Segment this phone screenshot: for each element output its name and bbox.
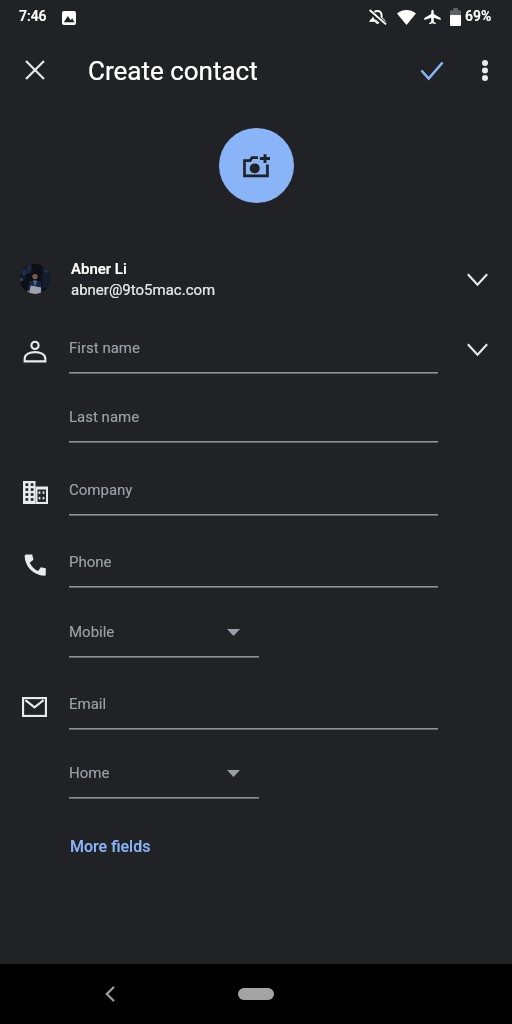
staticText: More fields bbox=[70, 837, 151, 856]
button[interactable]: Phone bbox=[69, 545, 438, 589]
staticText: Mobile bbox=[69, 623, 115, 641]
button[interactable]: Save contact bbox=[408, 46, 456, 94]
staticText: abner@9to5mac.com bbox=[71, 281, 216, 299]
button[interactable]: Close bbox=[11, 46, 59, 94]
button[interactable]: Email bbox=[69, 687, 438, 731]
staticText: 69% bbox=[465, 8, 492, 24]
button[interactable]: Back bbox=[86, 964, 134, 1024]
staticText: Email bbox=[69, 695, 107, 713]
button[interactable]: Abner Li bbox=[0, 252, 512, 306]
button[interactable]: Add photo bbox=[219, 128, 294, 203]
staticText: 7:46 bbox=[19, 8, 47, 24]
staticText: Phone bbox=[69, 553, 112, 571]
staticText: Create contact bbox=[88, 56, 258, 86]
button[interactable]: Home bbox=[238, 988, 274, 1000]
staticText: Last name bbox=[69, 408, 140, 426]
button[interactable]: First name bbox=[69, 331, 438, 375]
button[interactable]: Change account bbox=[454, 256, 500, 302]
button[interactable]: Company bbox=[69, 473, 438, 517]
button[interactable]: Home bbox=[69, 756, 259, 800]
button[interactable]: More options bbox=[461, 46, 509, 94]
button[interactable]: Expand name fields bbox=[454, 326, 500, 372]
button[interactable]: Mobile bbox=[69, 615, 259, 659]
staticText: Company bbox=[69, 481, 133, 499]
button[interactable]: Last name bbox=[69, 400, 438, 444]
staticText: Abner Li bbox=[71, 260, 127, 278]
staticText: Home bbox=[69, 764, 110, 782]
button[interactable]: More fields bbox=[54, 825, 167, 868]
staticText: First name bbox=[69, 339, 140, 357]
